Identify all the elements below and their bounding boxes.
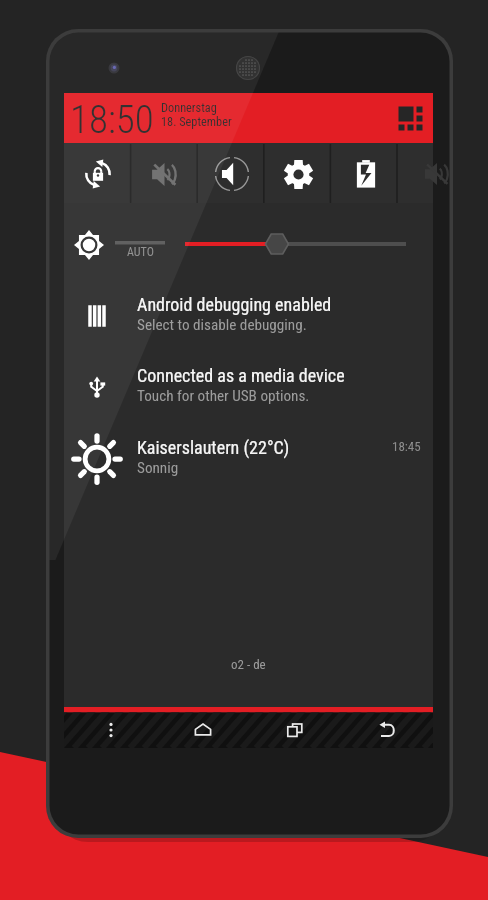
button[interactable]: Rotation lock: [64, 143, 131, 207]
button[interactable]: Settings: [265, 143, 332, 207]
button[interactable]: Sound off: [131, 143, 198, 207]
staticText: Kaiserslautern (22°C): [137, 437, 290, 458]
staticText: 18:45: [392, 439, 421, 454]
button[interactable]: Kaiserslautern (22°C): [64, 428, 433, 499]
staticText: Donnerstag: [161, 101, 217, 115]
button[interactable]: Battery: [332, 143, 399, 207]
button[interactable]: Connected as a media device: [64, 356, 433, 427]
button[interactable]: Android debugging enabled: [64, 285, 433, 356]
button[interactable]: Recents: [249, 707, 341, 748]
staticText: Sonnig: [137, 459, 179, 477]
staticText: Touch for other USB options.: [137, 387, 310, 405]
button[interactable]: Menu: [64, 707, 157, 748]
staticText: AUTO: [127, 245, 154, 259]
button[interactable]: Brightness slider: [175, 229, 416, 259]
staticText: 18:50: [70, 97, 154, 143]
button[interactable]: Auto brightness: [113, 228, 167, 260]
button[interactable]: Volume: [198, 143, 265, 207]
staticText: Android debugging enabled: [137, 294, 332, 315]
staticText: Connected as a media device: [137, 365, 345, 386]
button[interactable]: Back: [341, 707, 433, 748]
button[interactable]: Quick settings: [387, 93, 433, 143]
button[interactable]: Home: [157, 707, 249, 748]
button[interactable]: 18:50: [64, 93, 433, 143]
button[interactable]: Brightness: [73, 229, 104, 260]
staticText: 18. September: [161, 115, 232, 129]
staticText: Select to disable debugging.: [137, 316, 307, 334]
staticText: o2 - de: [231, 657, 266, 672]
